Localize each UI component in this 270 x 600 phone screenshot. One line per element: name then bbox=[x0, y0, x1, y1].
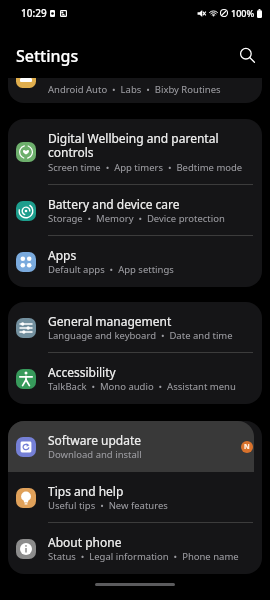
staticText: Android Auto • Labs • Bixby Routines bbox=[48, 83, 221, 96]
staticText: Status • Legal information • Phone name bbox=[48, 550, 239, 563]
button[interactable]: Digital Wellbeing and parental controls bbox=[8, 119, 262, 185]
staticText: 100% bbox=[231, 7, 255, 19]
staticText: 10:29 bbox=[21, 6, 47, 20]
staticText: Tips and help bbox=[48, 483, 124, 499]
staticText: Battery and device care bbox=[48, 196, 180, 212]
staticText: Storage • Memory • Device protection bbox=[48, 212, 225, 225]
staticText: N bbox=[244, 442, 250, 452]
staticText: Settings bbox=[16, 45, 79, 67]
button[interactable]: General management bbox=[8, 302, 262, 353]
button[interactable]: Tips and help bbox=[8, 472, 262, 523]
button[interactable]: Accessibility bbox=[8, 353, 262, 404]
staticText: Software update bbox=[48, 432, 142, 448]
button[interactable]: Apps bbox=[8, 236, 262, 287]
staticText: Apps bbox=[48, 247, 77, 263]
staticText: Useful tips • New features bbox=[48, 499, 168, 512]
button[interactable]: Software update bbox=[8, 421, 262, 472]
staticText: Digital Wellbeing and parental controls bbox=[48, 130, 219, 161]
button[interactable]: Search bbox=[232, 40, 262, 70]
staticText: Default apps • App settings bbox=[48, 263, 174, 276]
button[interactable]: About phone bbox=[8, 523, 262, 574]
staticText: Language and keyboard • Date and time bbox=[48, 329, 233, 342]
staticText: Download and install bbox=[48, 448, 142, 461]
staticText: About phone bbox=[48, 534, 122, 550]
button[interactable]: Android Auto • Labs • Bixby Routines bbox=[8, 78, 262, 103]
staticText: TalkBack • Mono audio • Assistant menu bbox=[48, 380, 236, 393]
staticText: Accessibility bbox=[48, 364, 116, 380]
staticText: Screen time • App timers • Bedtime mode bbox=[48, 161, 243, 174]
button[interactable]: Battery and device care bbox=[8, 185, 262, 236]
staticText: General management bbox=[48, 313, 172, 329]
